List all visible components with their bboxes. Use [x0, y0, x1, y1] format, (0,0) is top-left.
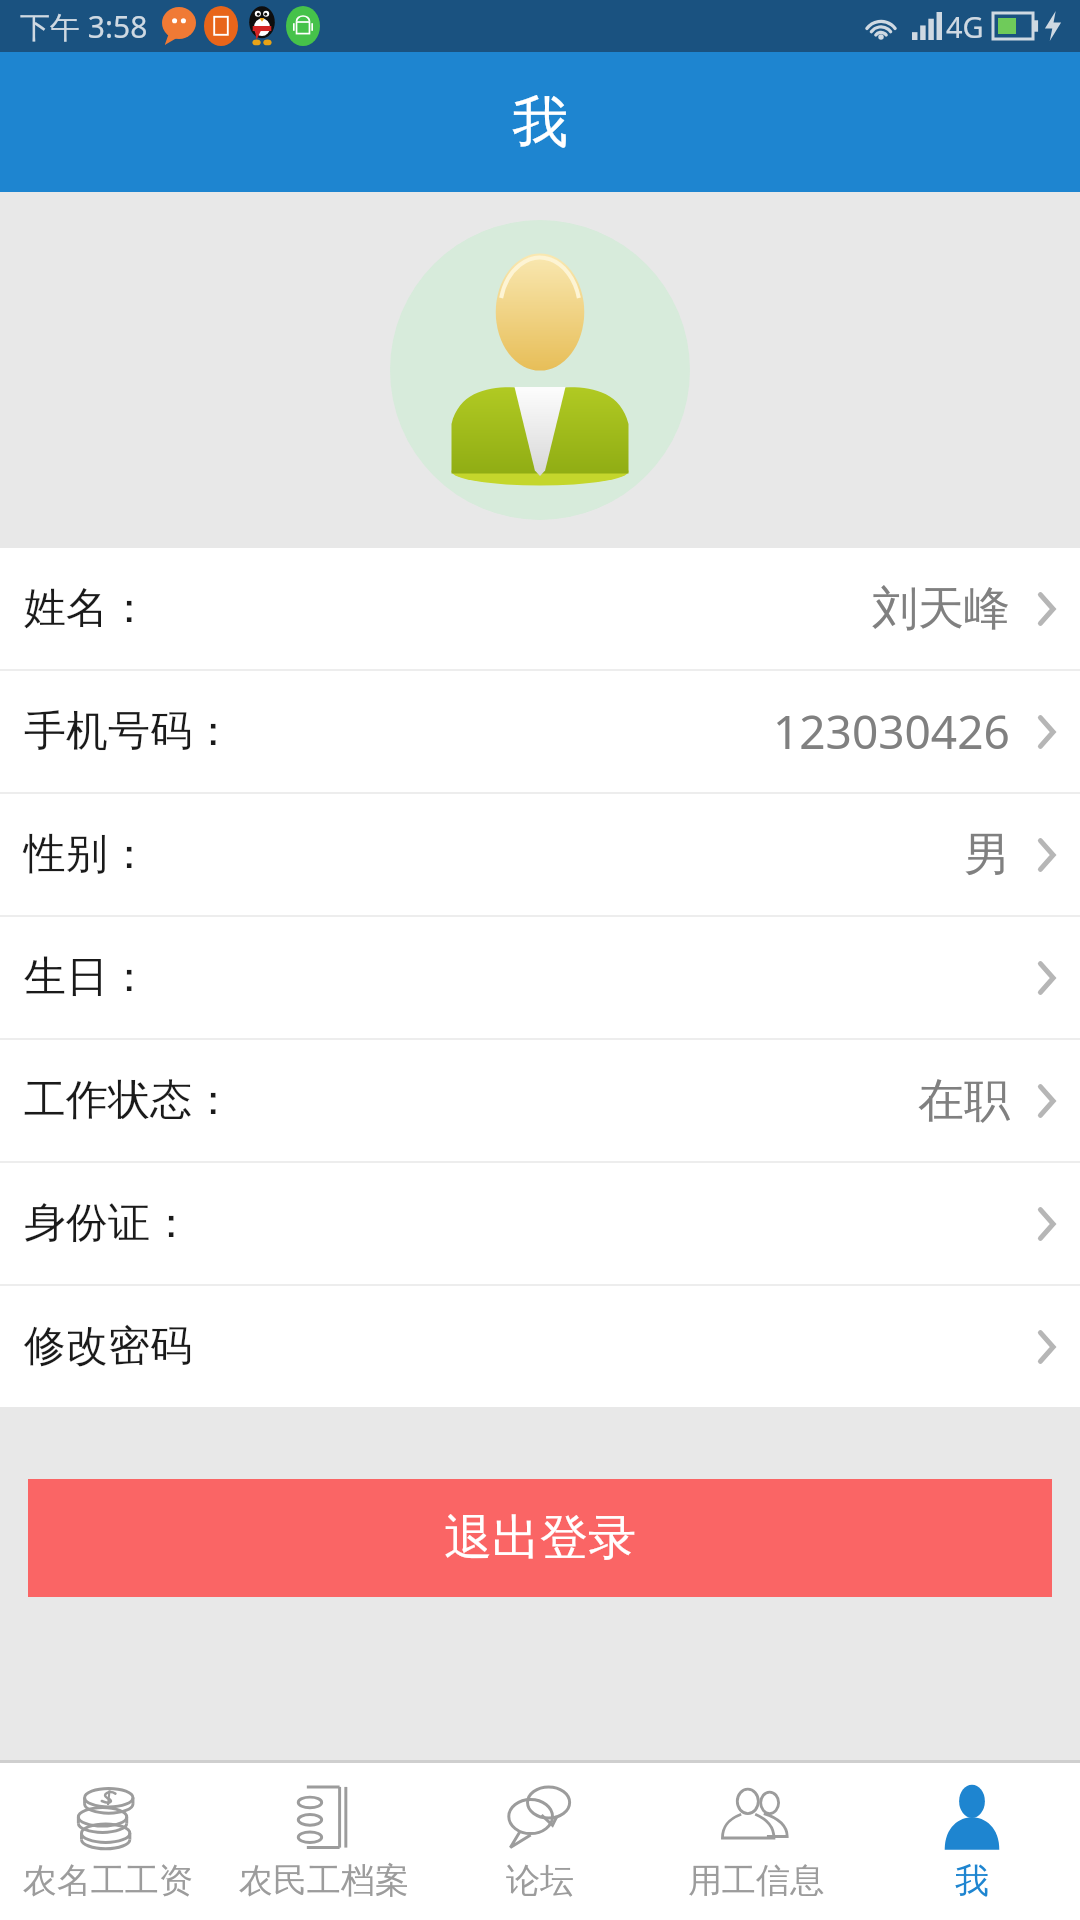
button[interactable]: 姓名： [0, 548, 1080, 669]
staticText: 刘天峰 [872, 580, 1010, 638]
button[interactable]: 我 [864, 1763, 1080, 1920]
staticText: 男 [964, 826, 1010, 884]
staticText: 123030426 [773, 700, 1010, 763]
button[interactable]: 性别： [0, 794, 1080, 915]
staticText: 修改密码 [24, 1320, 192, 1373]
staticText: 生日： [24, 951, 150, 1004]
staticText: 身份证： [24, 1197, 192, 1250]
staticText: 姓名： [24, 582, 150, 635]
staticText: 农民工档案 [239, 1859, 409, 1902]
staticText: 在职 [918, 1072, 1010, 1130]
button[interactable]: 农民工档案 [216, 1763, 432, 1920]
staticText: 我 [512, 87, 568, 158]
button[interactable]: 手机号码： [0, 671, 1080, 792]
button[interactable]: 退出登录 [28, 1479, 1052, 1597]
staticText: 我 [955, 1859, 989, 1902]
button[interactable]: 用工信息 [648, 1763, 864, 1920]
button[interactable]: 修改密码 [0, 1286, 1080, 1407]
staticText: 论坛 [506, 1859, 574, 1902]
staticText: 下午 3:58 [20, 6, 148, 47]
staticText: 手机号码： [24, 705, 234, 758]
staticText: 农名工工资 [23, 1859, 193, 1902]
button[interactable]: 身份证： [0, 1163, 1080, 1284]
staticText: 4G [946, 7, 984, 46]
staticText: 工作状态： [24, 1074, 234, 1127]
staticText: 用工信息 [688, 1859, 824, 1902]
staticText: 性别： [24, 828, 150, 881]
button[interactable]: 论坛 [432, 1763, 648, 1920]
button[interactable]: 农名工工资 [0, 1763, 216, 1920]
button[interactable]: 工作状态： [0, 1040, 1080, 1161]
button[interactable]: 生日： [0, 917, 1080, 1038]
staticText: 退出登录 [444, 1508, 636, 1568]
